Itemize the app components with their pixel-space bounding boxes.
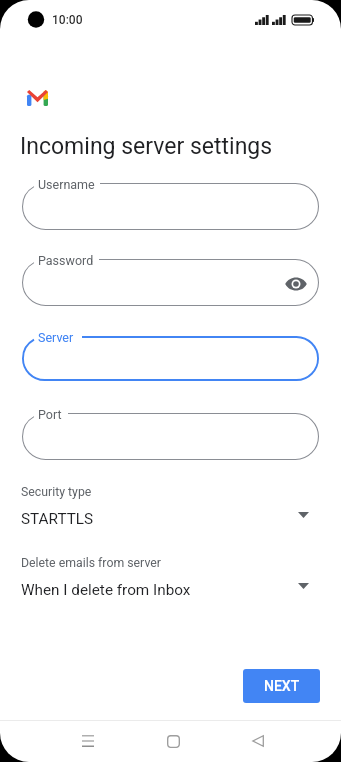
button[interactable]: Server bbox=[22, 336, 319, 381]
button[interactable]: Show password bbox=[277, 267, 315, 301]
button[interactable]: Port bbox=[22, 413, 319, 460]
staticText: 10:00 bbox=[52, 13, 83, 27]
staticText: Security type bbox=[21, 485, 92, 499]
button[interactable]: Username bbox=[22, 183, 319, 230]
button[interactable]: Back bbox=[238, 721, 278, 761]
staticText: NEXT bbox=[264, 678, 300, 694]
button[interactable]: Security type bbox=[0, 484, 341, 532]
staticText: Port bbox=[38, 407, 62, 422]
button[interactable]: Delete emails from server bbox=[0, 555, 341, 603]
staticText: Username bbox=[38, 177, 95, 192]
staticText: Password bbox=[38, 253, 94, 268]
staticText: Delete emails from server bbox=[21, 556, 161, 570]
staticText: Server bbox=[38, 330, 74, 345]
button[interactable]: Home bbox=[153, 721, 193, 761]
button[interactable]: Password bbox=[22, 259, 319, 306]
button[interactable]: Recents bbox=[68, 721, 108, 761]
staticText: When I delete from Inbox bbox=[21, 581, 191, 599]
button[interactable]: NEXT bbox=[243, 669, 320, 703]
staticText: STARTTLS bbox=[21, 510, 94, 528]
staticText: Incoming server settings bbox=[20, 133, 273, 160]
